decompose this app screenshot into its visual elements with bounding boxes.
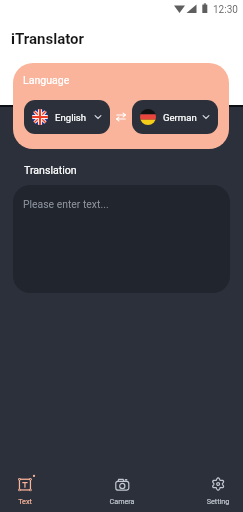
staticText: Translation bbox=[24, 164, 77, 176]
button[interactable]: German bbox=[132, 100, 218, 134]
staticText: Please enter text... bbox=[23, 198, 109, 210]
staticText: English bbox=[55, 112, 94, 123]
button[interactable]: English bbox=[24, 100, 110, 134]
button[interactable]: Text bbox=[0, 474, 50, 505]
button[interactable]: Camera bbox=[97, 474, 147, 505]
button[interactable]: Setting bbox=[193, 474, 243, 505]
other: Text bbox=[14, 474, 36, 496]
other: Camera bbox=[111, 474, 133, 496]
staticText: Text bbox=[0, 497, 50, 505]
staticText: Camera bbox=[97, 497, 147, 505]
other: Setting bbox=[207, 474, 229, 496]
staticText: Setting bbox=[193, 497, 243, 505]
other: Swap languages bbox=[115, 111, 127, 123]
staticText: iTranslator bbox=[11, 30, 85, 48]
staticText: 12:30 bbox=[213, 4, 238, 16]
staticText: Language bbox=[23, 74, 70, 86]
button[interactable]: Please enter text... bbox=[13, 185, 230, 293]
staticText: German bbox=[163, 112, 202, 123]
